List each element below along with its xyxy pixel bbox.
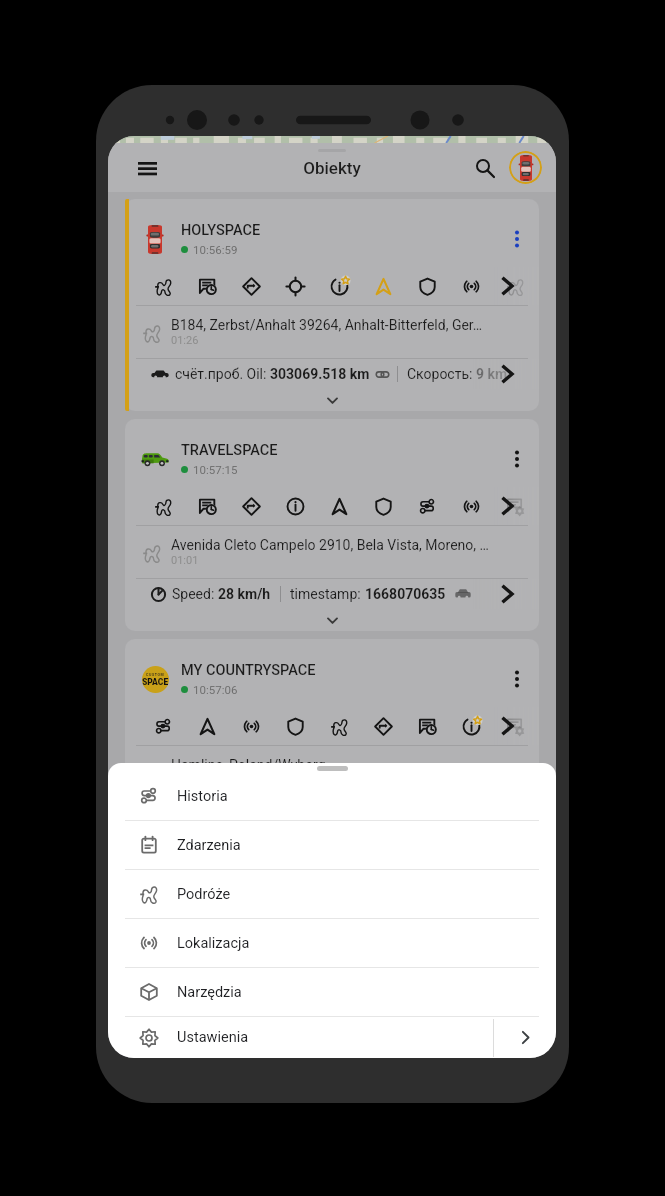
staticText: Obiekty <box>303 158 361 178</box>
button[interactable]: Action 11 <box>317 487 361 525</box>
staticText: TRAVELSPACE <box>181 442 278 459</box>
button[interactable]: More data <box>495 579 539 609</box>
button[interactable]: Action 4 <box>317 267 361 305</box>
button[interactable]: Action 6 <box>361 487 405 525</box>
staticText: Zdarzenia <box>177 837 556 854</box>
button[interactable]: Lokalizacja <box>108 919 556 967</box>
staticText: Lokalizacja <box>177 935 556 952</box>
staticText: Narzędzia <box>177 984 556 1001</box>
staticText: 01:26 <box>171 334 199 347</box>
button[interactable]: Action 8 <box>405 487 449 525</box>
button[interactable]: Action 1 <box>185 267 229 305</box>
button[interactable]: Podróże <box>108 870 556 918</box>
button[interactable]: More options <box>498 440 536 478</box>
button[interactable]: Zdarzenia <box>108 821 556 869</box>
staticText: CUSTOM <box>146 673 165 677</box>
button[interactable]: Action 8 <box>141 707 185 745</box>
button[interactable]: More actions <box>495 487 539 525</box>
button[interactable]: Action 5 <box>361 267 405 305</box>
staticText: 10:56:59 <box>193 243 238 256</box>
staticText: Speed: <box>172 586 218 602</box>
button[interactable]: Action 7 <box>229 707 273 745</box>
button[interactable]: Action 10 <box>273 487 317 525</box>
staticText: 10:57:06 <box>193 683 238 696</box>
button[interactable]: More options <box>498 660 536 698</box>
button[interactable]: Action 9 <box>493 267 537 305</box>
button[interactable]: More actions <box>495 267 539 305</box>
button[interactable]: Ustawienia <box>108 1017 556 1058</box>
staticText: 01:01 <box>171 554 199 567</box>
button[interactable]: Action 11 <box>185 707 229 745</box>
button[interactable]: CUSTOM <box>125 639 539 851</box>
button[interactable]: Expand <box>125 389 539 411</box>
button[interactable]: Action 0 <box>317 707 361 745</box>
staticText: Hamline, Poland/Wyborg <box>171 757 326 773</box>
button[interactable]: Action 2 <box>229 267 273 305</box>
button[interactable]: Action 12 <box>493 487 537 525</box>
staticText: 28 km/h <box>218 586 271 602</box>
staticText: 10:57:15 <box>193 463 238 476</box>
button[interactable]: Open settings <box>494 1017 556 1058</box>
staticText: Historia <box>177 788 556 805</box>
button[interactable]: More data <box>495 359 539 389</box>
button[interactable]: Search <box>463 146 507 190</box>
button[interactable]: Action 4 <box>449 707 493 745</box>
button[interactable]: Action 0 <box>141 267 185 305</box>
button[interactable]: Action 7 <box>449 487 493 525</box>
button[interactable]: HOLYSPACE <box>125 199 539 411</box>
button[interactable]: Expand <box>125 829 539 851</box>
staticText: 1668070635 <box>365 586 446 602</box>
staticText: HOLYSPACE <box>181 222 261 239</box>
button[interactable]: Vehicle avatar <box>509 151 542 184</box>
button[interactable]: Action 7 <box>449 267 493 305</box>
staticText: Ustawienia <box>177 1029 493 1046</box>
staticText: счёт.проб. Oil: <box>175 366 270 382</box>
button[interactable]: Action 1 <box>405 707 449 745</box>
button[interactable]: More actions <box>495 707 539 745</box>
button[interactable]: Action 6 <box>273 707 317 745</box>
staticText: Скорость: <box>407 366 476 382</box>
button[interactable]: Action 2 <box>361 707 405 745</box>
button[interactable]: Action 3 <box>273 267 317 305</box>
staticText: 303069.518 km <box>270 366 370 382</box>
button[interactable]: TRAVELSPACE <box>125 419 539 631</box>
staticText: Podróże <box>177 886 556 903</box>
button[interactable]: Action 1 <box>185 487 229 525</box>
staticText: MY COUNTRYSPACE <box>181 662 316 679</box>
button[interactable]: Action 2 <box>229 487 273 525</box>
staticText: SPACE <box>142 677 169 687</box>
button[interactable]: Historia <box>108 772 556 820</box>
button[interactable]: Action 6 <box>405 267 449 305</box>
button[interactable]: More options <box>498 220 536 258</box>
button[interactable]: Menu <box>123 144 171 192</box>
button[interactable]: Expand <box>125 609 539 631</box>
staticText: 9 km <box>476 366 508 382</box>
staticText: B184, Zerbst/Anhalt 39264, Anhalt-Bitter… <box>171 317 483 333</box>
button[interactable]: More data <box>495 799 539 829</box>
button[interactable]: Narzędzia <box>108 968 556 1016</box>
button[interactable]: Action 12 <box>493 707 537 745</box>
staticText: timestamp: <box>290 586 365 602</box>
staticText: Avenida Cleto Campelo 2910, Bela Vista, … <box>171 537 489 553</box>
button[interactable]: Action 0 <box>141 487 185 525</box>
